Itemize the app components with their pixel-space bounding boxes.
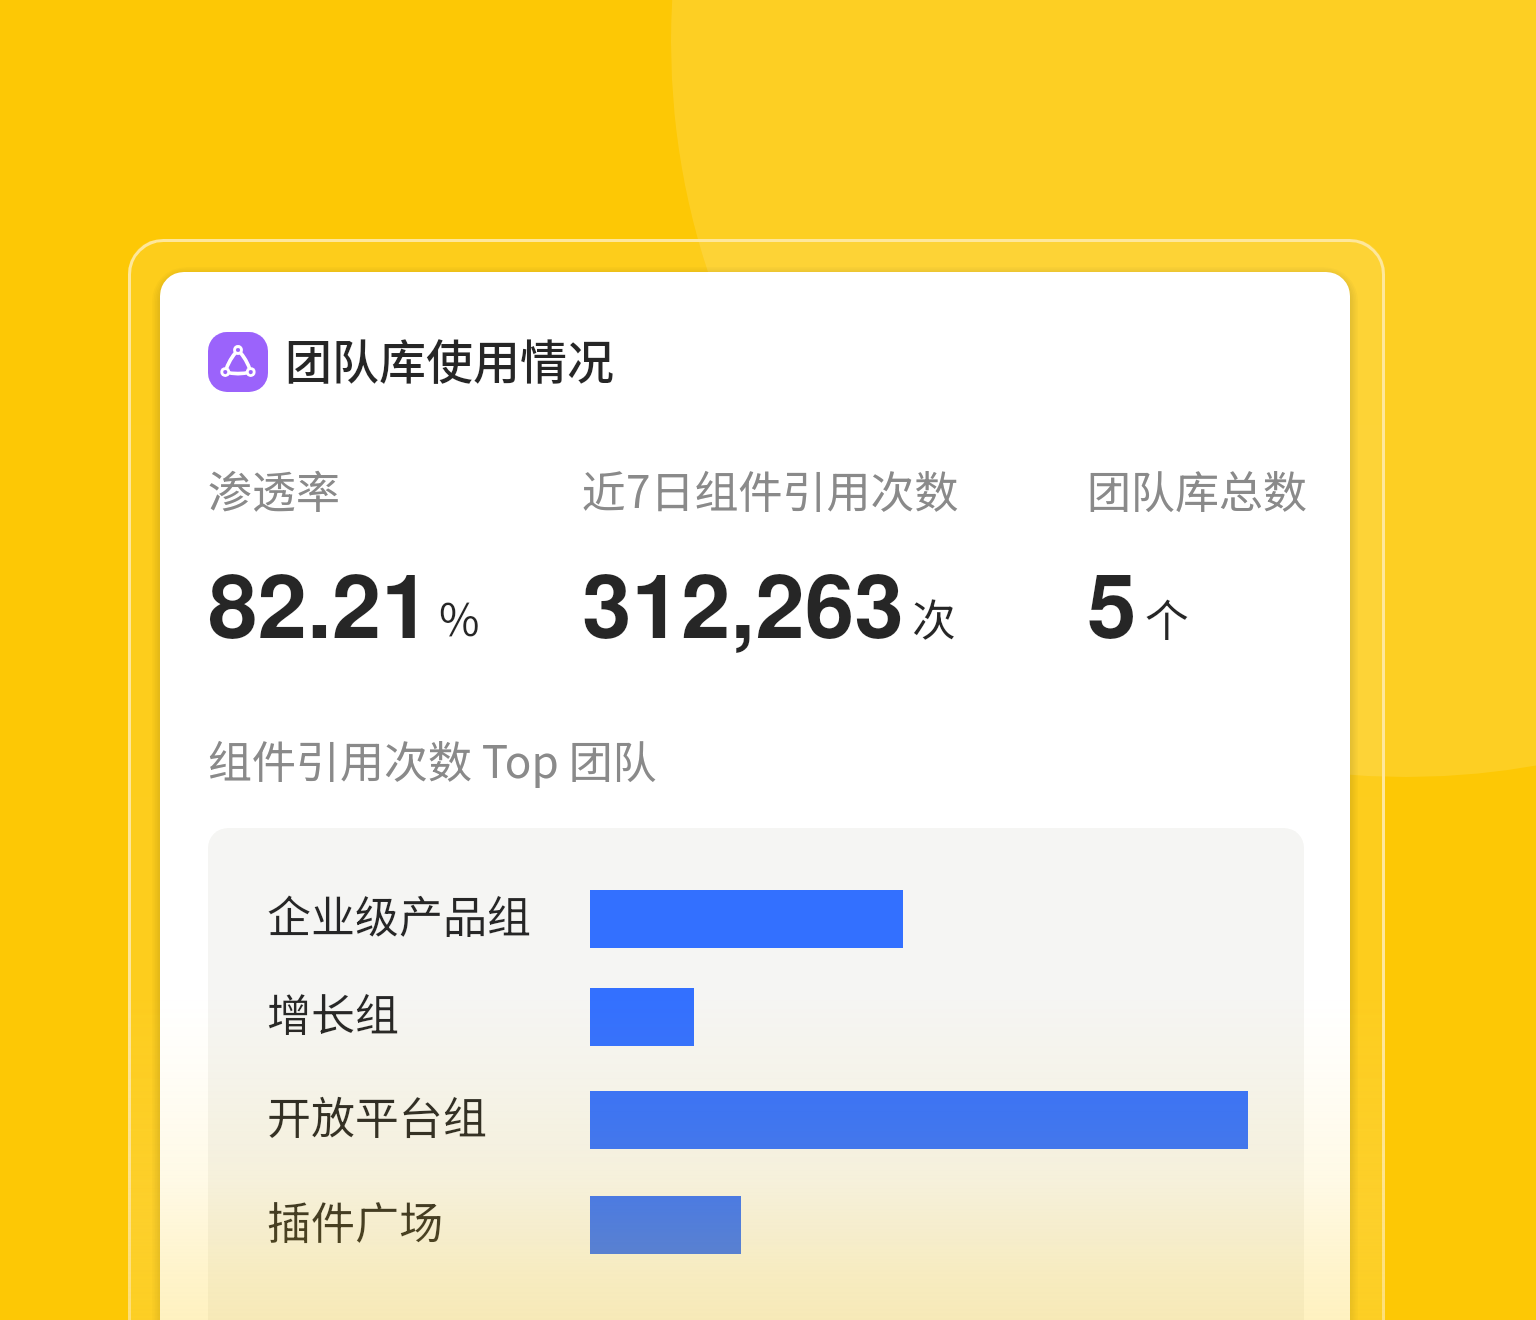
staticText: 插件广场	[267, 1188, 443, 1246]
staticText: 渗透率	[208, 457, 340, 521]
staticText: 团队库使用情况	[285, 324, 614, 392]
staticText: 团队库总数	[1087, 457, 1307, 521]
staticText: 开放平台组	[267, 1083, 487, 1141]
other: Team library	[208, 332, 268, 392]
staticText: %	[439, 585, 480, 649]
staticText: 次	[912, 585, 956, 649]
staticText: 312,263	[582, 538, 904, 665]
staticText: 82.21	[208, 538, 431, 665]
button[interactable]: 近7日组件引用次数	[582, 457, 959, 665]
staticText: 5	[1087, 538, 1137, 665]
button[interactable]: 渗透率	[208, 457, 480, 665]
button[interactable]: 开放平台组	[208, 1091, 1304, 1149]
button[interactable]: 企业级产品组	[208, 890, 1304, 948]
button[interactable]: 插件广场	[208, 1196, 1304, 1254]
button[interactable]: 增长组	[208, 988, 1304, 1046]
staticText: 增长组	[267, 980, 399, 1038]
staticText: 个	[1145, 585, 1189, 649]
staticText: 组件引用次数 Top 团队	[208, 727, 657, 791]
button[interactable]: Team library	[208, 328, 614, 396]
staticText: 企业级产品组	[267, 882, 531, 940]
staticText: 近7日组件引用次数	[582, 457, 959, 521]
button[interactable]: 团队库总数	[1087, 457, 1307, 665]
